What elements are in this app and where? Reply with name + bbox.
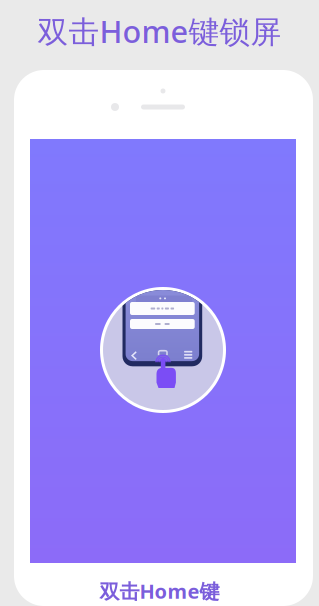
staticText: 双击Home键 — [99, 578, 219, 604]
staticText: 双击Home键锁屏 — [37, 11, 281, 51]
